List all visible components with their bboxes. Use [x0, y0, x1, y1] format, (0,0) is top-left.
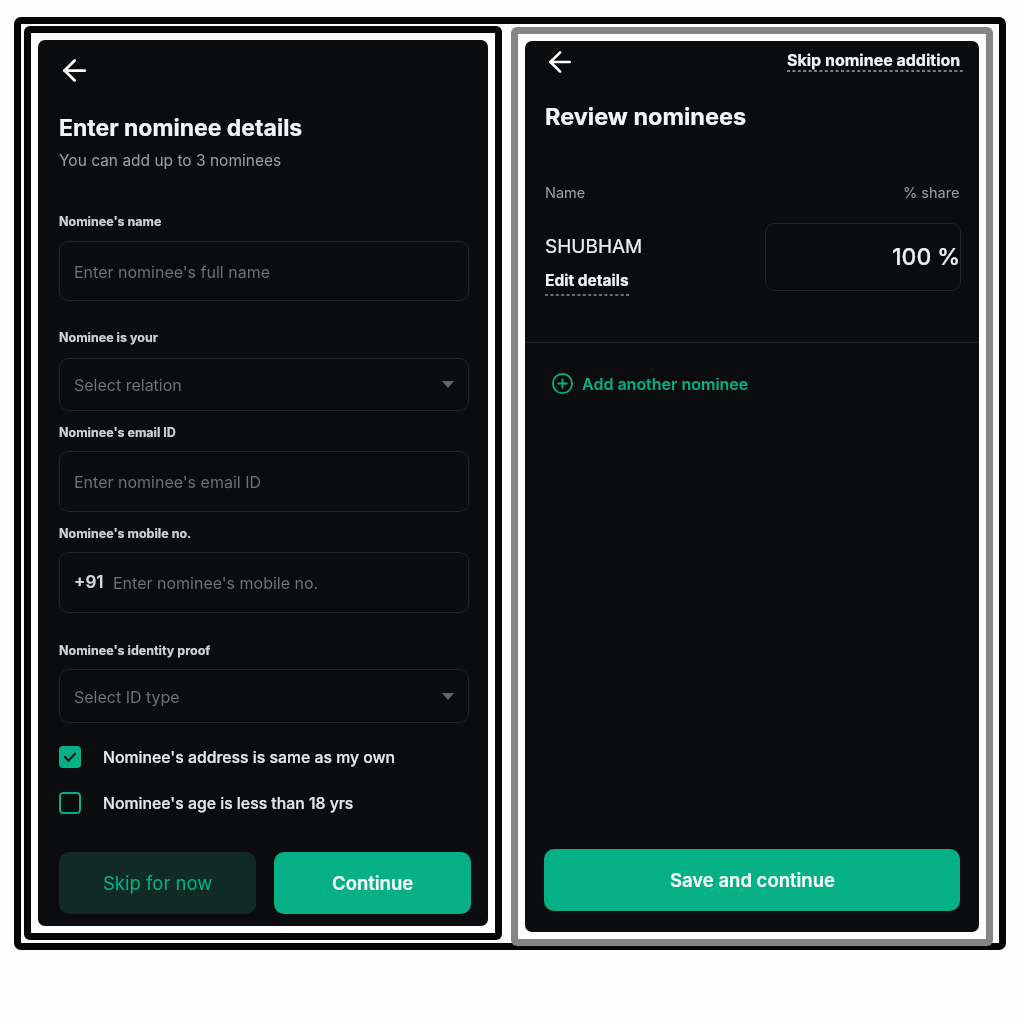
button[interactable]: Enter nominee's full name — [59, 241, 469, 301]
staticText: Nominee's mobile no. — [59, 526, 192, 541]
button[interactable]: Select relation — [59, 358, 469, 411]
staticText: Name — [545, 184, 586, 202]
staticText: You can add up to 3 nominees — [59, 151, 282, 170]
button[interactable]: Save and continue — [544, 849, 960, 911]
staticText: Nominee's identity proof — [59, 643, 211, 658]
staticText: % share — [903, 184, 960, 202]
staticText: Nominee is your — [59, 330, 158, 345]
button[interactable]: Skip nominee addition — [787, 50, 961, 72]
staticText: Select relation — [74, 375, 182, 394]
staticText: Nominee's email ID — [59, 425, 176, 440]
staticText: Enter nominee's email ID — [74, 472, 261, 491]
button[interactable]: Back — [55, 51, 93, 89]
staticText: Continue — [332, 872, 414, 894]
button[interactable]: Add another nominee — [552, 373, 749, 394]
staticText: Nominee's name — [59, 214, 162, 229]
button[interactable]: Select ID type — [59, 669, 469, 723]
staticText: Skip nominee addition — [787, 50, 961, 69]
staticText: Enter nominee's mobile no. — [113, 573, 319, 592]
staticText: Enter nominee details — [59, 114, 303, 142]
staticText: 100 % — [892, 243, 961, 271]
staticText: Edit details — [545, 271, 629, 290]
button[interactable]: Skip for now — [59, 852, 256, 914]
button[interactable]: Nominee's age is less than 18 yrs — [59, 792, 469, 814]
staticText: Select ID type — [74, 687, 180, 706]
staticText: +91 — [74, 572, 104, 593]
staticText: Save and continue — [670, 869, 835, 891]
staticText: Skip for now — [103, 872, 213, 894]
button[interactable]: Back — [541, 43, 578, 80]
button[interactable]: Continue — [274, 852, 471, 914]
button[interactable]: +91 — [59, 552, 469, 613]
button[interactable]: 100 % — [765, 223, 961, 291]
staticText: Nominee's address is same as my own — [103, 748, 396, 767]
staticText: SHUBHAM — [545, 235, 643, 258]
staticText: Enter nominee's full name — [74, 262, 270, 281]
staticText: Add another nominee — [582, 374, 749, 393]
button[interactable]: Nominee's address is same as my own — [59, 746, 469, 768]
staticText: Nominee's age is less than 18 yrs — [103, 794, 354, 813]
button[interactable]: Enter nominee's email ID — [59, 451, 469, 512]
staticText: Review nominees — [545, 102, 747, 130]
button[interactable]: Edit details — [545, 271, 629, 296]
